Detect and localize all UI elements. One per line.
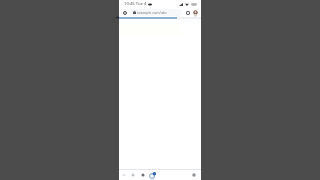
staticText: example.com/abc xyxy=(137,10,167,15)
button[interactable]: Home xyxy=(121,9,128,16)
staticText: 10:45 Tue 4 xyxy=(124,1,147,7)
button[interactable]: Account xyxy=(192,9,199,16)
button[interactable]: Share xyxy=(140,172,146,178)
button[interactable]: Forward xyxy=(130,172,136,178)
button[interactable]: example.com/abc xyxy=(130,9,182,16)
button[interactable]: Tabs xyxy=(184,9,191,16)
button[interactable]: Back xyxy=(121,172,127,178)
button[interactable]: Refresh xyxy=(147,171,156,180)
button[interactable]: More xyxy=(191,172,197,178)
